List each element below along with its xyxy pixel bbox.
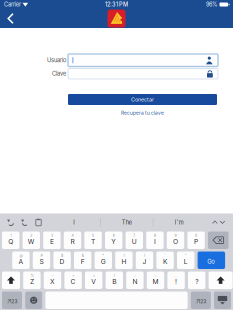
staticText: .?123: [6, 299, 17, 304]
button[interactable]: #: [33, 251, 50, 269]
button[interactable]: @: [12, 251, 30, 269]
button[interactable]: Back: [0, 10, 23, 27]
button[interactable]: =: [85, 271, 102, 289]
button[interactable]: Hide keyboard: [214, 291, 231, 309]
button[interactable]: Emoji: [25, 291, 42, 309]
staticText: 9: [174, 233, 176, 238]
staticText: S: [39, 257, 43, 266]
button[interactable]: [198, 251, 225, 269]
staticText: 4: [71, 233, 73, 238]
button[interactable]: +: [64, 271, 82, 289]
button[interactable]: 1: [2, 231, 19, 249]
staticText: M: [152, 277, 158, 286]
staticText: I: [154, 237, 156, 246]
staticText: I'm: [175, 219, 184, 226]
button[interactable]: 8: [146, 231, 164, 249]
staticText: V: [91, 277, 96, 286]
staticText: 8: [154, 233, 156, 238]
button[interactable]: 2: [23, 231, 40, 249]
button[interactable]: [191, 291, 211, 309]
button[interactable]: I: [48, 219, 100, 226]
button[interactable]: Paste: [32, 219, 45, 226]
staticText: The: [122, 219, 132, 226]
staticText: R: [70, 237, 74, 246]
staticText: ,: [176, 273, 177, 278]
staticText: Conectar: [131, 96, 154, 103]
button[interactable]: Shift: [209, 271, 233, 289]
staticText: 96%: [206, 1, 217, 8]
staticText: N: [132, 277, 137, 286]
button[interactable]: (: [115, 251, 133, 269]
button[interactable]: 3: [43, 231, 61, 249]
staticText: 1: [10, 233, 11, 238]
staticText: H: [121, 257, 126, 266]
button[interactable]: &: [74, 251, 91, 269]
staticText: ": [185, 253, 187, 258]
button[interactable]: *: [95, 251, 112, 269]
staticText: P: [194, 237, 198, 246]
staticText: #: [40, 253, 42, 258]
button[interactable]: ': [156, 251, 174, 269]
button[interactable]: ;: [126, 271, 144, 289]
button[interactable]: [2, 291, 22, 309]
button[interactable]: ": [177, 251, 194, 269]
button[interactable]: %: [23, 271, 41, 289]
button[interactable]: 6: [105, 231, 122, 249]
staticText: Clave: [52, 70, 66, 77]
button[interactable]: :: [147, 271, 164, 289]
staticText: Recupera tu clave: [121, 110, 164, 116]
staticText: Go: [207, 258, 215, 265]
staticText: Q: [8, 237, 13, 246]
button[interactable]: 4: [64, 231, 81, 249]
staticText: &: [82, 253, 84, 258]
staticText: U: [132, 237, 137, 246]
button[interactable]: $: [53, 251, 71, 269]
button[interactable]: ,: [167, 271, 185, 289]
button[interactable]: 0: [187, 231, 205, 249]
staticText: 2: [30, 233, 32, 238]
staticText: G: [101, 257, 106, 266]
button[interactable]: ): [136, 251, 153, 269]
button[interactable]: /: [106, 271, 123, 289]
button[interactable]: The: [101, 219, 153, 226]
staticText: T: [91, 237, 95, 246]
staticText: .: [196, 273, 197, 278]
button[interactable]: Undo: [4, 219, 18, 226]
button[interactable]: 5: [84, 231, 102, 249]
button[interactable]: Recupera tu clave: [68, 110, 217, 116]
staticText: (: [123, 253, 124, 258]
staticText: X: [50, 277, 55, 286]
staticText: D: [60, 257, 65, 266]
button[interactable]: 7: [126, 231, 143, 249]
staticText: E: [50, 237, 54, 246]
staticText: 12:31 PM: [105, 1, 128, 8]
staticText: ': [165, 253, 166, 258]
staticText: Z: [30, 277, 34, 286]
button[interactable]: Shift: [2, 271, 20, 289]
staticText: J: [142, 257, 146, 266]
staticText: +: [72, 273, 74, 278]
staticText: 6: [113, 233, 115, 238]
staticText: /: [114, 273, 115, 278]
button[interactable]: -: [44, 271, 61, 289]
button[interactable]: Delete: [208, 231, 228, 249]
staticText: $: [61, 253, 63, 258]
button[interactable]: .: [188, 271, 205, 289]
staticText: A: [18, 257, 23, 266]
staticText: 7: [133, 233, 135, 238]
staticText: :: [155, 273, 156, 278]
staticText: B: [112, 277, 116, 286]
staticText: ;: [134, 273, 135, 278]
button[interactable]: Previous or next field: [208, 221, 229, 224]
staticText: ?: [195, 277, 198, 286]
button[interactable]: Conectar: [68, 94, 217, 105]
staticText: -: [51, 273, 53, 278]
button[interactable]: I'm: [153, 219, 205, 226]
button[interactable]: Redo: [18, 219, 32, 226]
staticText: =: [93, 273, 95, 278]
staticText: W: [28, 237, 35, 246]
button[interactable]: 9: [167, 231, 184, 249]
staticText: Y: [111, 237, 116, 246]
staticText: I: [73, 219, 75, 226]
